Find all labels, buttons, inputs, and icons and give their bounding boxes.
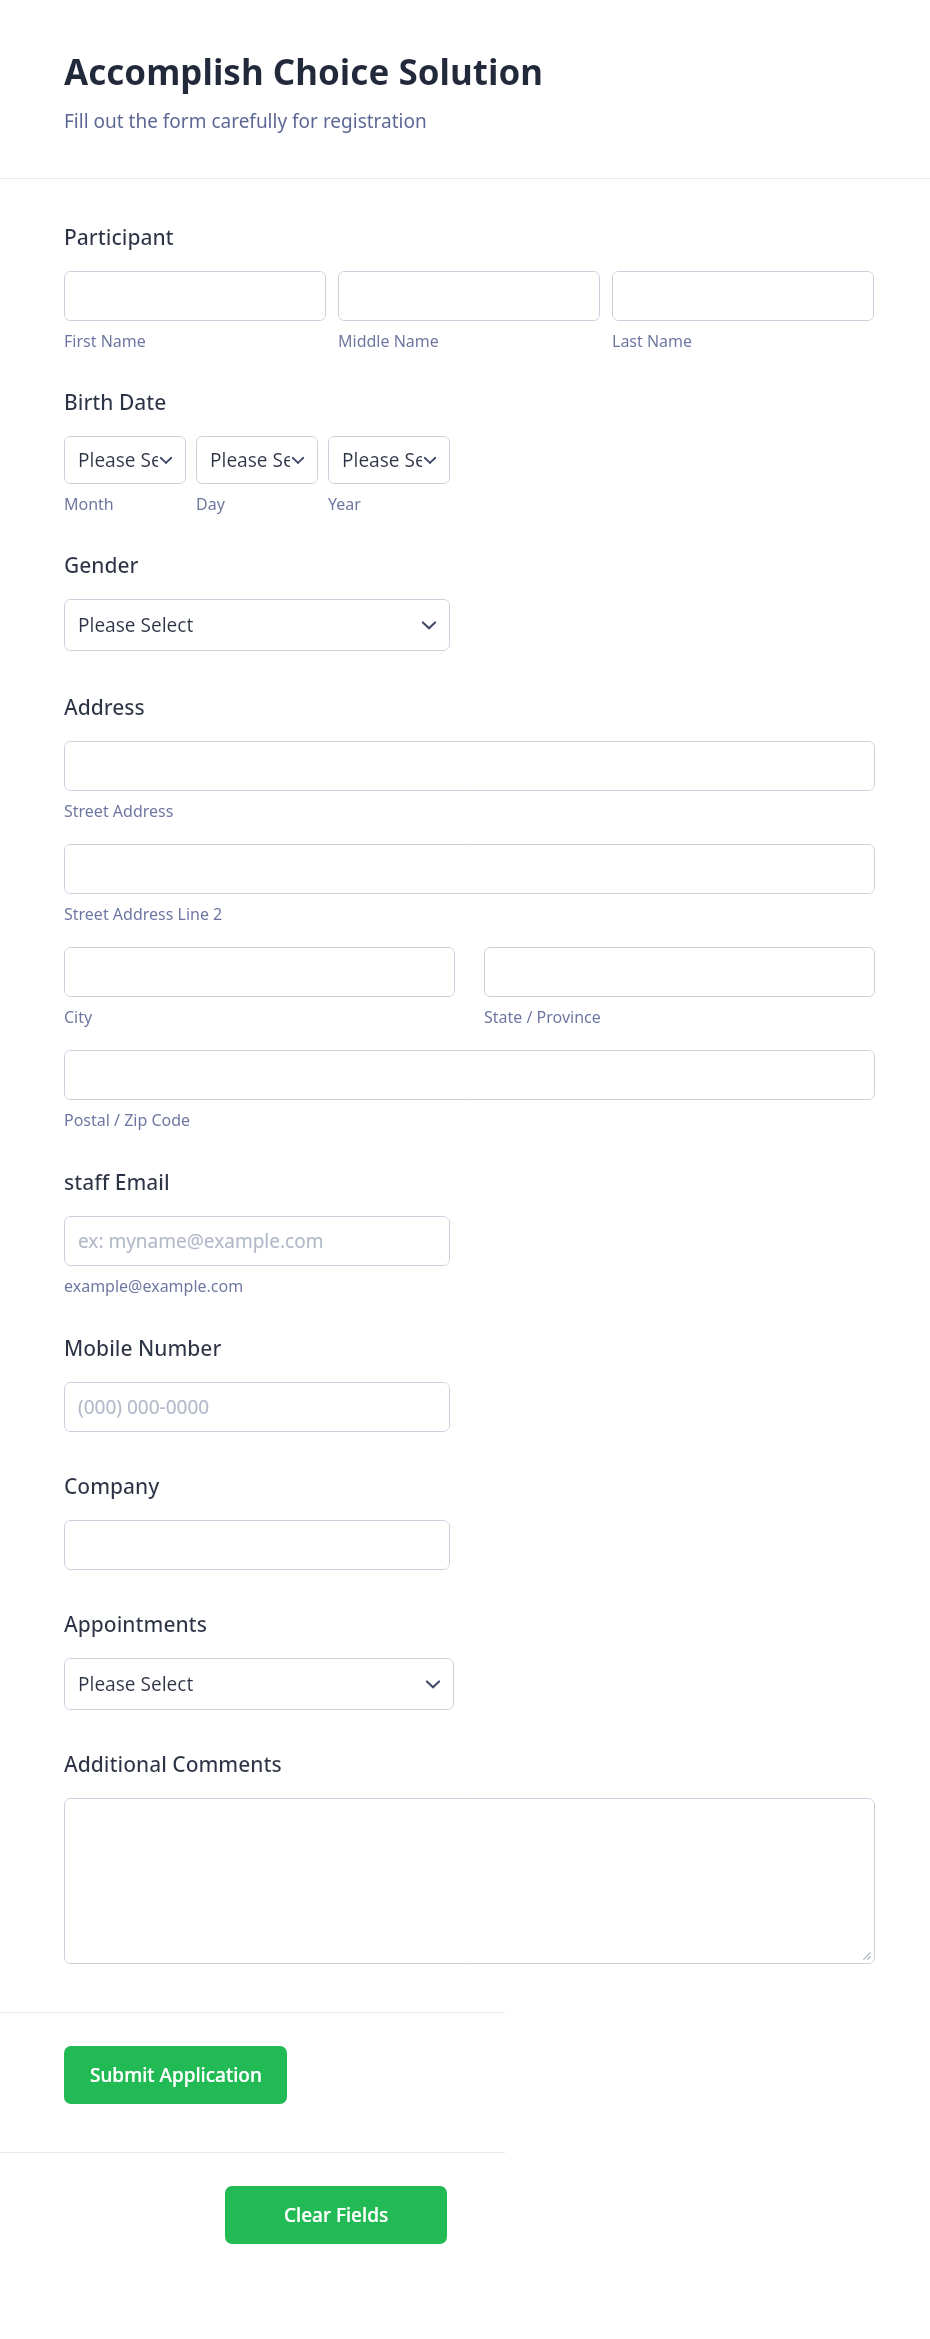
button[interactable]: Gender	[64, 599, 450, 651]
button[interactable]: Year	[328, 436, 450, 484]
button[interactable]: Middle Name	[338, 271, 600, 321]
button[interactable]: Last Name	[612, 271, 874, 321]
staticText: Accomplish Choice Solution	[64, 48, 544, 96]
staticText: Mobile Number	[64, 1334, 222, 1363]
staticText: Middle Name	[338, 330, 439, 352]
staticText: Please Select	[210, 447, 290, 473]
staticText: Company	[64, 1472, 160, 1501]
staticText: State / Province	[484, 1006, 601, 1028]
staticText: Please Select	[78, 1671, 194, 1697]
staticText: Please Select	[342, 447, 422, 473]
button[interactable]: City	[64, 947, 455, 997]
staticText: Clear Fields	[284, 2202, 389, 2228]
button[interactable]: Month	[64, 436, 186, 484]
staticText: Appointments	[64, 1610, 207, 1639]
staticText: Fill out the form carefully for registra…	[64, 108, 427, 134]
staticText: First Name	[64, 330, 146, 352]
staticText: Birth Date	[64, 388, 167, 417]
button[interactable]: Submit Application	[64, 2046, 287, 2104]
button[interactable]: Street Address	[64, 741, 875, 791]
staticText: example@example.com	[64, 1275, 244, 1297]
staticText: Month	[64, 493, 114, 515]
staticText: Postal / Zip Code	[64, 1109, 191, 1131]
button[interactable]: Additional Comments	[64, 1798, 875, 1964]
staticText: Year	[328, 493, 361, 515]
staticText: staff Email	[64, 1168, 170, 1197]
staticText: Day	[196, 493, 225, 515]
staticText: Address	[64, 693, 145, 722]
staticText: City	[64, 1006, 93, 1028]
staticText: Gender	[64, 551, 139, 580]
staticText: Additional Comments	[64, 1750, 282, 1779]
staticText: (000) 000-0000	[78, 1394, 210, 1420]
button[interactable]: State / Province	[484, 947, 875, 997]
staticText: Last Name	[612, 330, 693, 352]
button[interactable]: Street Address Line 2	[64, 844, 875, 894]
staticText: Street Address	[64, 800, 174, 822]
button[interactable]: Mobile Number	[64, 1382, 450, 1432]
button[interactable]: Postal / Zip Code	[64, 1050, 875, 1100]
staticText: Participant	[64, 223, 174, 252]
button[interactable]: Day	[196, 436, 318, 484]
staticText: Please Select	[78, 612, 194, 638]
button[interactable]: staff Email	[64, 1216, 450, 1266]
staticText: Street Address Line 2	[64, 903, 223, 925]
staticText: Please Select	[78, 447, 158, 473]
button[interactable]: Company	[64, 1520, 450, 1570]
staticText: Submit Application	[90, 2062, 262, 2088]
button[interactable]: Appointments	[64, 1658, 454, 1710]
staticText: ex: myname@example.com	[78, 1228, 324, 1254]
button[interactable]: Clear Fields	[225, 2186, 447, 2244]
button[interactable]: First Name	[64, 271, 326, 321]
